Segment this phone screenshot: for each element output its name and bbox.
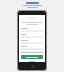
button[interactable]: App logo	[26, 2, 39, 4]
button[interactable]	[21, 28, 43, 32]
button[interactable]	[21, 40, 43, 44]
button[interactable]	[21, 46, 43, 50]
button[interactable]	[27, 61, 37, 62]
button[interactable]	[21, 55, 43, 59]
button[interactable]	[21, 34, 43, 38]
